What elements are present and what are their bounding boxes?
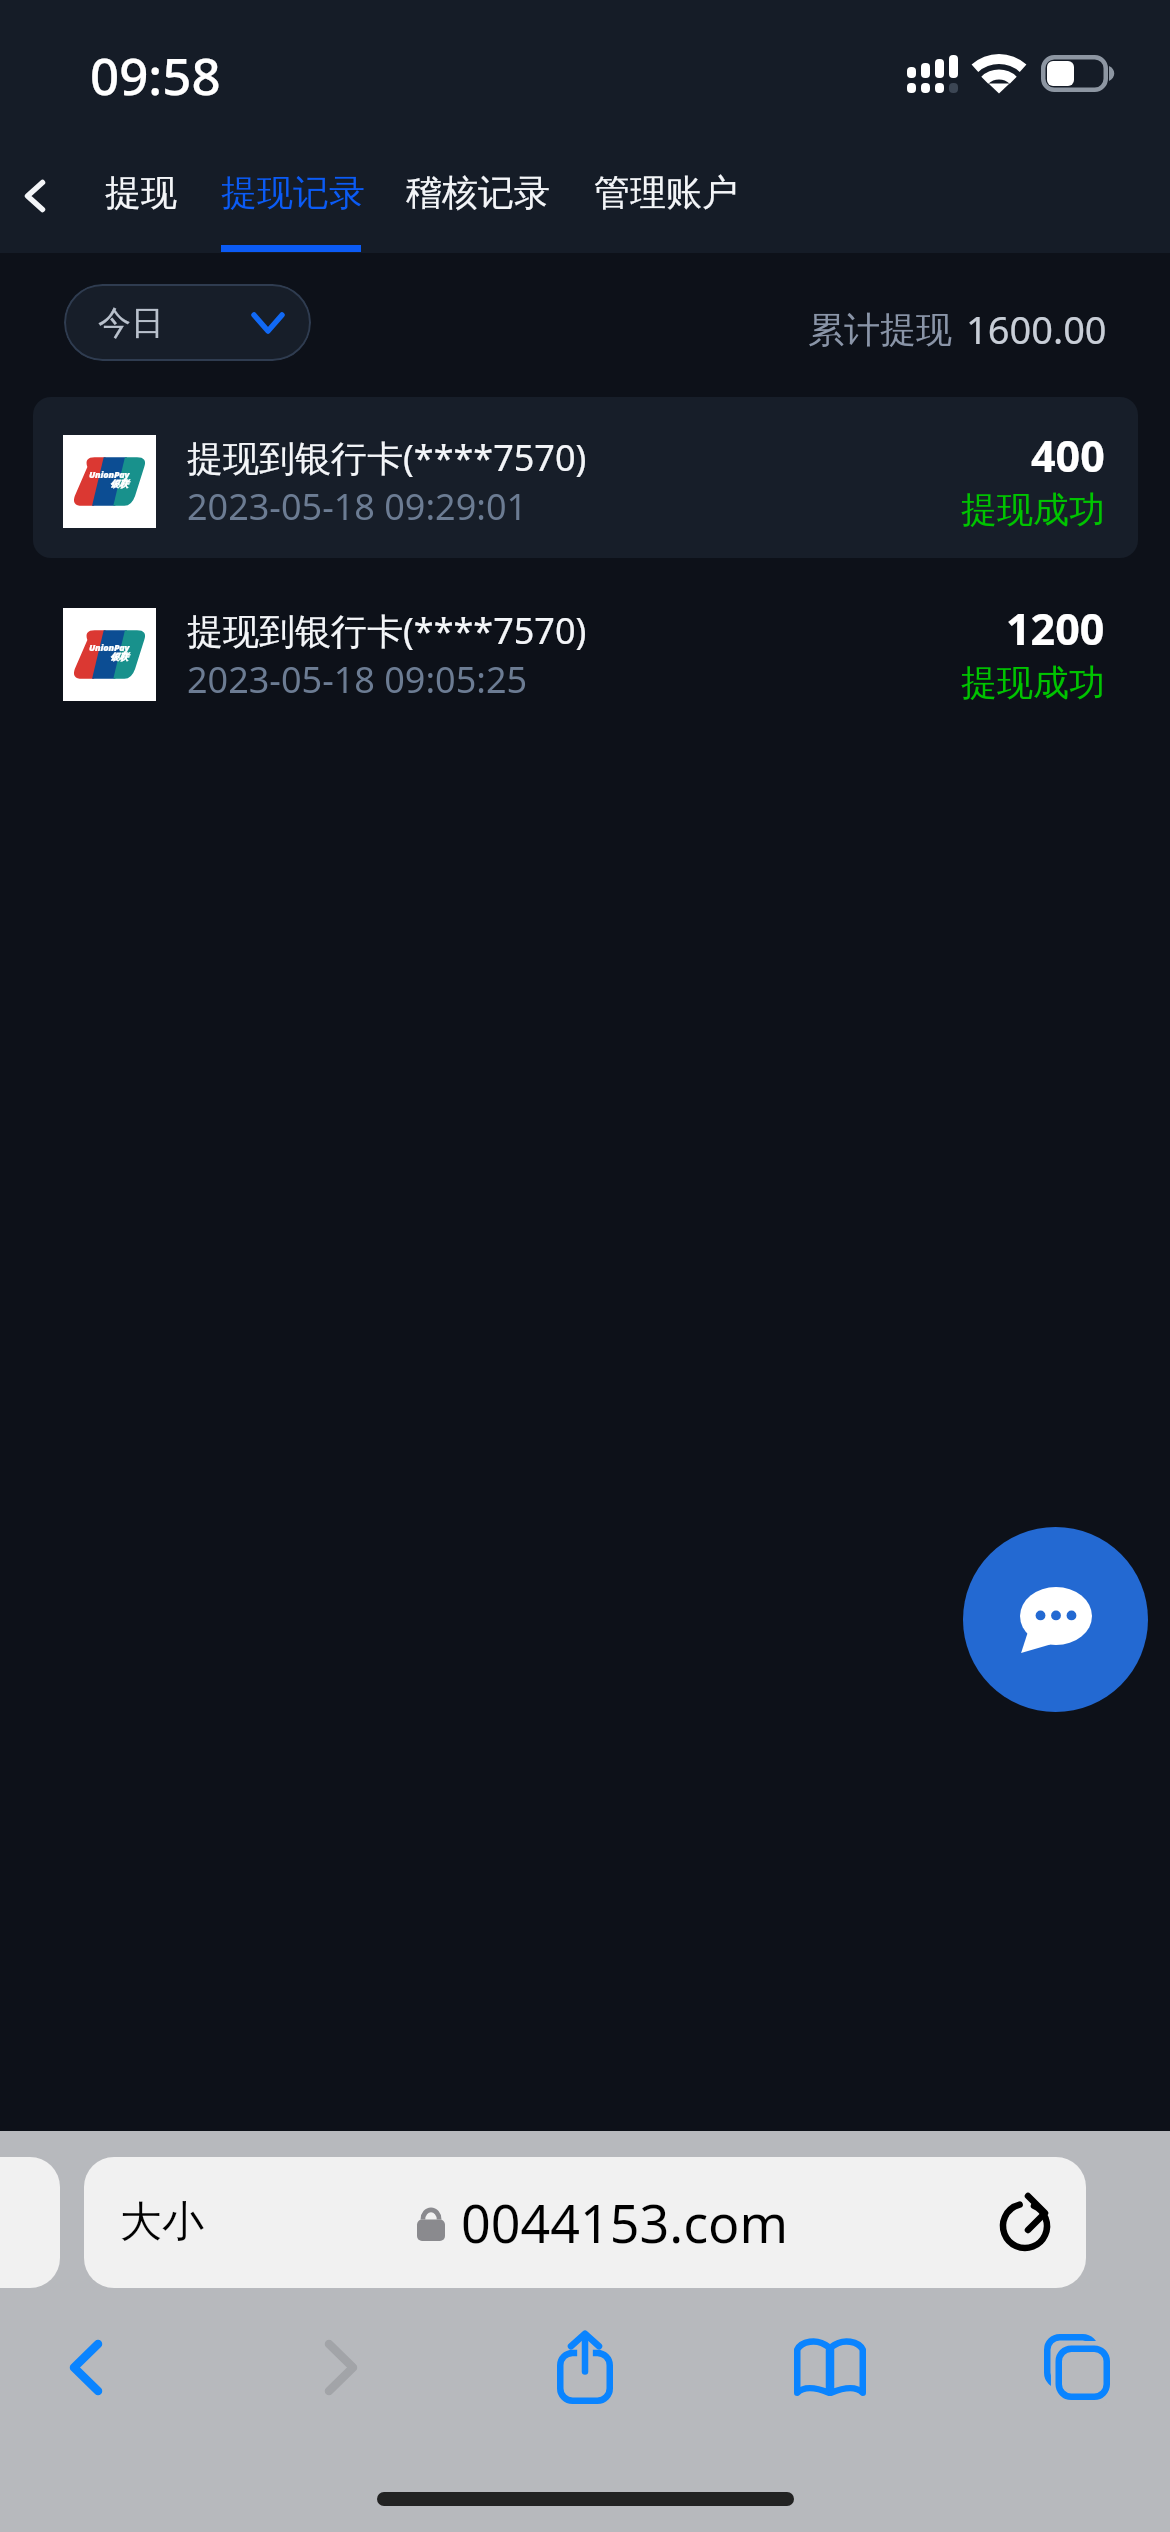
staticText: 2023-05-18 09:05:25 (187, 655, 528, 704)
staticText: 今日 (98, 302, 164, 344)
button[interactable]: Customer service chat (963, 1527, 1148, 1712)
button[interactable]: Forward (281, 2307, 401, 2427)
staticText: 提现记录 (221, 170, 365, 215)
button[interactable]: 提现记录 (209, 152, 377, 232)
staticText: 银联 (110, 651, 128, 662)
staticText: 银联 (110, 478, 128, 489)
staticText: 提现到银行卡(****7570) (187, 606, 587, 655)
button[interactable]: 提现 (93, 152, 189, 232)
button[interactable]: UnionPay (33, 397, 1138, 558)
staticText: 管理账户 (594, 170, 738, 215)
button[interactable]: 大小 (84, 2157, 1086, 2288)
button[interactable]: Back (0, 161, 70, 231)
staticText: 提现成功 (961, 487, 1105, 532)
staticText: 2023-05-18 09:29:01 (187, 482, 528, 531)
staticText: 09:58 (90, 40, 221, 109)
button[interactable]: 今日 (64, 284, 311, 361)
button[interactable]: 稽核记录 (394, 152, 562, 232)
button[interactable]: Tabs (1017, 2307, 1137, 2427)
staticText: 1200 (1006, 599, 1105, 658)
staticText: 稽核记录 (406, 170, 550, 215)
staticText: 大小 (120, 2196, 204, 2249)
staticText: 0044153.com (461, 2187, 789, 2258)
staticText: 400 (1031, 426, 1105, 485)
staticText: UnionPay (89, 641, 130, 653)
button[interactable]: UnionPay (33, 570, 1138, 731)
button[interactable]: Share (525, 2307, 645, 2427)
staticText: 提现 (105, 170, 177, 215)
button[interactable]: 管理账户 (582, 152, 750, 232)
button[interactable]: Back (26, 2307, 146, 2427)
staticText: 1600.00 (966, 303, 1107, 355)
staticText: UnionPay (89, 468, 130, 480)
button[interactable]: Bookmarks (770, 2307, 890, 2427)
staticText: 提现到银行卡(****7570) (187, 433, 587, 482)
staticText: 累计提现 (808, 307, 952, 352)
staticText: 提现成功 (961, 660, 1105, 705)
